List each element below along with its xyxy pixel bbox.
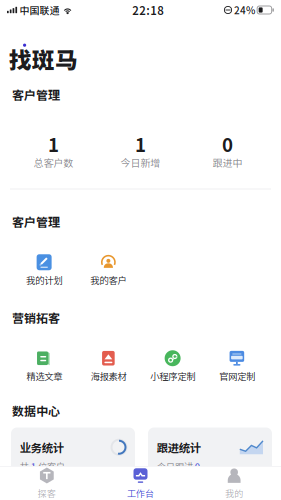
button[interactable]: 我的客户 bbox=[76, 254, 140, 287]
staticText: 中国联通 bbox=[20, 3, 60, 17]
staticText: 跟进中 bbox=[212, 155, 242, 170]
staticText: 找斑马 bbox=[9, 42, 78, 75]
staticText: 精选文章 bbox=[26, 369, 62, 383]
staticText: 海报素材 bbox=[90, 369, 126, 383]
staticText: 跟进统计 bbox=[157, 439, 201, 455]
staticText: 24% bbox=[234, 3, 255, 17]
staticText: 今日跟进 bbox=[157, 459, 193, 473]
button[interactable]: 探客 bbox=[0, 462, 94, 500]
staticText: 客户管理 bbox=[12, 86, 60, 103]
staticText: 1 bbox=[135, 130, 146, 157]
button[interactable]: 业务统计 bbox=[11, 427, 135, 483]
staticText: 数据中心 bbox=[12, 402, 60, 419]
staticText: 我的客户 bbox=[90, 273, 126, 287]
button[interactable]: 官网定制 bbox=[205, 350, 269, 383]
staticText: 0 bbox=[222, 130, 233, 157]
staticText: 工作台 bbox=[127, 486, 154, 499]
staticText: 今日新增 bbox=[120, 155, 160, 170]
button[interactable]: 小程序定制 bbox=[140, 350, 205, 383]
button[interactable]: 跟进统计 bbox=[148, 427, 272, 483]
staticText: 我的 bbox=[225, 486, 243, 499]
button[interactable]: 海报素材 bbox=[76, 350, 140, 383]
staticText: 位客户 bbox=[38, 459, 65, 473]
staticText: 营销拓客 bbox=[12, 309, 60, 326]
staticText: 官网定制 bbox=[219, 369, 255, 383]
staticText: 1 bbox=[31, 459, 36, 473]
staticText: 0 bbox=[195, 459, 200, 473]
staticText: 1 bbox=[48, 130, 59, 157]
staticText: 22:18 bbox=[132, 2, 164, 18]
button[interactable]: 我的计划 bbox=[12, 254, 76, 287]
button[interactable]: 工作台 bbox=[94, 462, 187, 500]
staticText: 客户管理 bbox=[12, 213, 60, 230]
staticText: 小程序定制 bbox=[150, 369, 195, 383]
button[interactable]: 我的 bbox=[187, 462, 281, 500]
staticText: 我的计划 bbox=[26, 273, 62, 287]
button[interactable]: 精选文章 bbox=[12, 350, 76, 383]
staticText: 业务统计 bbox=[20, 439, 64, 455]
staticText: 探客 bbox=[38, 486, 56, 499]
staticText: 总客户数 bbox=[33, 155, 73, 170]
staticText: 共 bbox=[20, 459, 29, 473]
